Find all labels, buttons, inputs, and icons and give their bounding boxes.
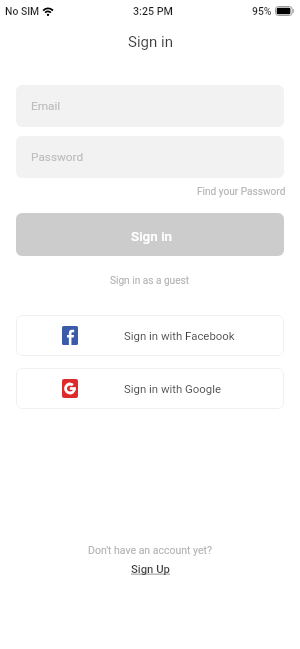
button[interactable]: Find your Password xyxy=(197,186,286,198)
button[interactable]: Sign in with Google xyxy=(16,368,284,409)
staticText: Sign in xyxy=(131,228,173,244)
staticText: Sign Up xyxy=(131,563,170,576)
button[interactable]: Sign in as a guest xyxy=(110,275,190,287)
staticText: Sign in as a guest xyxy=(110,275,190,287)
button[interactable]: Sign in with Facebook xyxy=(16,315,284,356)
button[interactable]: Sign Up xyxy=(131,563,170,576)
staticText: Don't have an account yet? xyxy=(88,544,212,556)
staticText: Password xyxy=(31,150,84,164)
staticText: Sign in with Facebook xyxy=(124,329,235,342)
staticText: Sign in with Google xyxy=(124,382,222,395)
staticText: Sign in xyxy=(128,33,173,51)
staticText: 3:25 PM xyxy=(133,5,173,18)
staticText: No SIM xyxy=(5,5,40,17)
button[interactable]: Password xyxy=(16,136,284,178)
button[interactable]: Sign in xyxy=(16,213,284,256)
button[interactable]: Email xyxy=(16,85,284,127)
staticText: 95% xyxy=(252,5,272,17)
staticText: Find your Password xyxy=(197,186,286,198)
staticText: Email xyxy=(31,99,61,113)
